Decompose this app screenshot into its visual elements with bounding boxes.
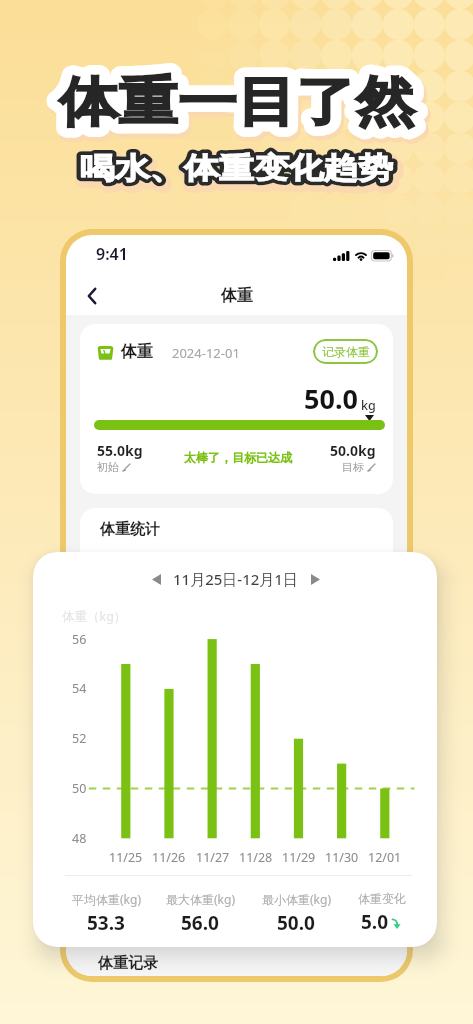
staticText: 最小体重(kg) bbox=[262, 891, 331, 907]
staticText: 11/30 bbox=[325, 849, 359, 866]
staticText: 11/27 bbox=[196, 849, 230, 866]
staticText: 52 bbox=[72, 730, 87, 747]
staticText: 体重（kg） bbox=[62, 608, 127, 625]
staticText: 喝水、体重变化趋势 bbox=[80, 150, 393, 187]
staticText: 喝水、体重变化趋势 bbox=[82, 154, 395, 191]
staticText: 11/25 bbox=[109, 849, 143, 866]
staticText: 11/28 bbox=[239, 849, 273, 866]
staticText: 53.3 bbox=[87, 910, 125, 936]
staticText: 12/01 bbox=[368, 849, 402, 866]
staticText: 平均体重(kg) bbox=[72, 891, 141, 907]
staticText: 体重统计 bbox=[100, 520, 160, 539]
staticText: 9:41 bbox=[96, 243, 128, 265]
button[interactable]: 记录体重 bbox=[313, 339, 378, 364]
staticText: 2024-12-01 bbox=[172, 344, 240, 362]
staticText: 50.0 bbox=[304, 380, 358, 417]
staticText: kg bbox=[361, 397, 376, 414]
staticText: 最大体重(kg) bbox=[166, 891, 235, 907]
staticText: 体重变化 bbox=[358, 891, 406, 906]
staticText: 50 bbox=[72, 780, 87, 797]
staticText: 55.0kg bbox=[97, 441, 143, 460]
staticText: 体重 bbox=[221, 286, 253, 306]
staticText: 初始 bbox=[97, 460, 119, 474]
button[interactable]: 上一周 bbox=[145, 568, 167, 590]
staticText: 太棒了，目标已达成 bbox=[184, 450, 292, 465]
staticText: 体重记录 bbox=[98, 954, 158, 973]
button[interactable]: 下一周 bbox=[304, 568, 326, 590]
staticText: 记录体重 bbox=[322, 344, 370, 359]
staticText: 5.0 bbox=[361, 909, 389, 935]
staticText: 11月25日-12月1日 bbox=[173, 569, 298, 589]
staticText: 50.0 bbox=[277, 910, 315, 936]
staticText: 体重一目了然 bbox=[59, 69, 415, 136]
staticText: 喝水、体重变化趋势 bbox=[80, 150, 393, 187]
staticText: 体重一目了然 bbox=[59, 69, 415, 136]
button[interactable]: 返回 bbox=[76, 280, 108, 312]
staticText: 体重 bbox=[121, 342, 153, 362]
staticText: 54 bbox=[72, 680, 87, 697]
staticText: 11/26 bbox=[152, 849, 186, 866]
staticText: 目标 bbox=[342, 460, 364, 474]
staticText: 体重一目了然 bbox=[61, 73, 417, 140]
staticText: 48 bbox=[72, 830, 87, 847]
staticText: 56 bbox=[72, 631, 87, 648]
staticText: 56.0 bbox=[181, 910, 219, 936]
staticText: 11/29 bbox=[282, 849, 316, 866]
staticText: 50.0kg bbox=[330, 441, 376, 460]
